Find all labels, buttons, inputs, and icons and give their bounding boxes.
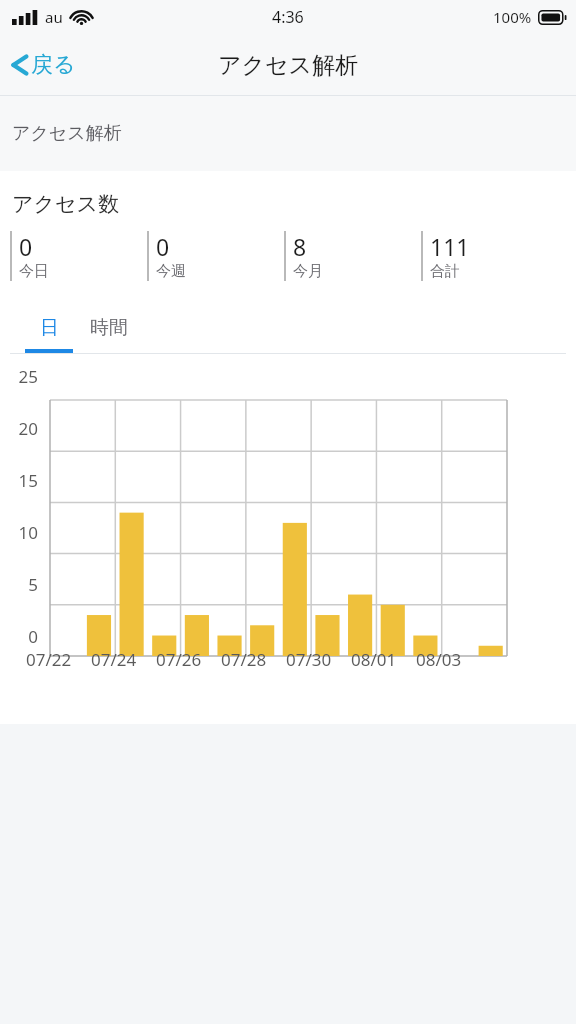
- staticText: 07/26: [156, 648, 202, 671]
- staticText: 07/24: [91, 648, 137, 671]
- button[interactable]: 日: [25, 311, 73, 353]
- staticText: 111: [430, 231, 470, 262]
- button[interactable]: 時間: [73, 311, 145, 345]
- staticText: 4:36: [272, 6, 304, 28]
- staticText: 20: [18, 417, 38, 440]
- staticText: 100%: [493, 7, 532, 27]
- staticText: 日: [40, 316, 59, 340]
- staticText: 8: [293, 231, 307, 262]
- staticText: 0: [28, 625, 38, 648]
- staticText: 25: [18, 365, 38, 388]
- button[interactable]: 戻る: [0, 43, 90, 87]
- staticText: 5: [28, 573, 38, 596]
- staticText: アクセス解析: [12, 122, 122, 145]
- staticText: 08/01: [351, 648, 397, 671]
- staticText: 07/30: [286, 648, 332, 671]
- staticText: アクセス数: [12, 191, 119, 217]
- staticText: au: [45, 7, 63, 27]
- staticText: 合計: [430, 262, 460, 281]
- staticText: アクセス解析: [218, 51, 359, 80]
- staticText: 15: [18, 469, 38, 492]
- staticText: 今週: [156, 262, 186, 281]
- staticText: 今月: [293, 262, 323, 281]
- staticText: 07/28: [221, 648, 267, 671]
- staticText: 今日: [19, 262, 49, 281]
- staticText: 10: [18, 521, 38, 544]
- staticText: 08/03: [416, 648, 462, 671]
- staticText: 0: [19, 231, 33, 262]
- staticText: 戻る: [31, 51, 76, 79]
- staticText: 時間: [90, 316, 128, 340]
- staticText: 07/22: [26, 648, 72, 671]
- staticText: 0: [156, 231, 170, 262]
